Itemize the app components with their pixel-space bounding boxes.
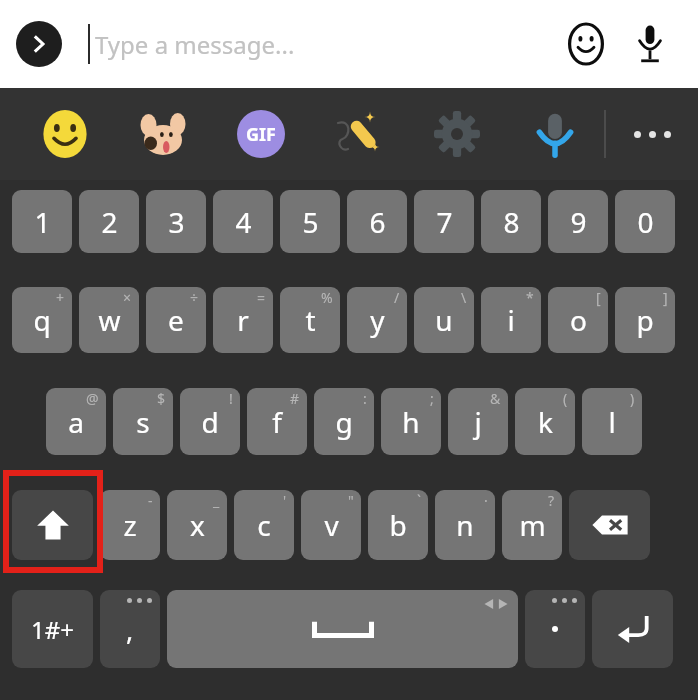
staticText: q: [33, 301, 51, 339]
staticText: ·: [484, 491, 488, 510]
staticText: \: [461, 288, 467, 307]
button[interactable]: Voice typing: [528, 107, 582, 161]
staticText: ): [630, 389, 635, 408]
button[interactable]: Shift: [12, 490, 93, 560]
button[interactable]: GIF: [234, 107, 288, 161]
staticText: !: [229, 389, 233, 408]
button[interactable]: y: [347, 287, 407, 353]
staticText: ×: [123, 288, 132, 307]
button[interactable]: Settings: [430, 107, 484, 161]
button[interactable]: ,: [100, 590, 160, 668]
button[interactable]: 5: [280, 190, 340, 253]
staticText: m: [519, 506, 546, 544]
staticText: 3: [168, 203, 185, 241]
staticText: e: [168, 301, 184, 339]
button[interactable]: s: [113, 388, 173, 455]
staticText: 0: [637, 203, 654, 241]
button[interactable]: 8: [481, 190, 541, 253]
staticText: +: [56, 288, 65, 307]
staticText: 5: [302, 203, 319, 241]
staticText: -: [148, 491, 153, 510]
button[interactable]: 9: [548, 190, 608, 253]
button[interactable]: x: [167, 490, 227, 560]
button[interactable]: i: [481, 287, 541, 353]
button[interactable]: Stickers: [136, 107, 190, 161]
button[interactable]: b: [368, 490, 428, 560]
button[interactable]: o: [548, 287, 608, 353]
staticText: w: [98, 301, 121, 339]
staticText: 9: [570, 203, 587, 241]
button[interactable]: Enter: [592, 590, 673, 668]
staticText: a: [68, 403, 84, 441]
button[interactable]: c: [234, 490, 294, 560]
staticText: g: [335, 403, 353, 441]
staticText: 7: [436, 203, 453, 241]
staticText: y: [370, 301, 385, 339]
button[interactable]: h: [381, 388, 441, 455]
button[interactable]: Handwriting: [332, 107, 386, 161]
button[interactable]: g: [314, 388, 374, 455]
staticText: u: [435, 301, 453, 339]
button[interactable]: p: [615, 287, 675, 353]
staticText: :: [363, 389, 367, 408]
staticText: *: [526, 288, 534, 307]
button[interactable]: e: [146, 287, 206, 353]
button[interactable]: 1: [12, 190, 72, 253]
staticText: 2: [101, 203, 118, 241]
button[interactable]: Emoji: [558, 16, 614, 72]
staticText: n: [456, 506, 474, 544]
button[interactable]: j: [448, 388, 508, 455]
staticText: 4: [235, 203, 252, 241]
staticText: GIF: [246, 122, 276, 147]
staticText: %: [321, 288, 333, 307]
staticText: ]: [663, 288, 668, 307]
button[interactable]: 0: [615, 190, 675, 253]
staticText: =: [257, 288, 266, 307]
staticText: ': [283, 491, 287, 510]
button[interactable]: d: [180, 388, 240, 455]
staticText: v: [324, 506, 339, 544]
button[interactable]: 2: [79, 190, 139, 253]
button[interactable]: f: [247, 388, 307, 455]
staticText: l: [608, 403, 616, 441]
button[interactable]: q: [12, 287, 72, 353]
staticText: t: [305, 301, 316, 339]
staticText: 8: [503, 203, 520, 241]
button[interactable]: l: [582, 388, 642, 455]
staticText: z: [123, 506, 137, 544]
button[interactable]: 6: [347, 190, 407, 253]
button[interactable]: [525, 590, 585, 668]
staticText: i: [507, 301, 515, 339]
button[interactable]: Voice input: [622, 16, 678, 72]
button[interactable]: n: [435, 490, 495, 560]
staticText: Type a message...: [95, 28, 295, 61]
button[interactable]: t: [280, 287, 340, 353]
button[interactable]: u: [414, 287, 474, 353]
staticText: h: [402, 403, 420, 441]
button[interactable]: 7: [414, 190, 474, 253]
staticText: o: [570, 301, 587, 339]
staticText: _: [213, 491, 220, 510]
button[interactable]: w: [79, 287, 139, 353]
button[interactable]: More options: [606, 102, 698, 166]
button[interactable]: m: [502, 490, 562, 560]
staticText: 6: [369, 203, 386, 241]
staticText: &: [490, 389, 501, 408]
button[interactable]: Space: [167, 590, 518, 668]
staticText: /: [394, 288, 400, 307]
button[interactable]: a: [46, 388, 106, 455]
button[interactable]: k: [515, 388, 575, 455]
staticText: b: [389, 506, 407, 544]
button[interactable]: Send: [16, 21, 62, 67]
button[interactable]: v: [301, 490, 361, 560]
button[interactable]: 3: [146, 190, 206, 253]
button[interactable]: Backspace: [569, 490, 650, 560]
staticText: r: [237, 301, 249, 339]
button[interactable]: 1#+: [12, 590, 93, 668]
staticText: p: [636, 301, 654, 339]
staticText: f: [272, 403, 282, 441]
button[interactable]: z: [100, 490, 160, 560]
button[interactable]: r: [213, 287, 273, 353]
button[interactable]: Emoji: [38, 107, 92, 161]
button[interactable]: 4: [213, 190, 273, 253]
